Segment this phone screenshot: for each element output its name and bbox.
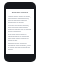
staticText: Lorem ipsum dolor sit amet, consectetur … [8,15,32,23]
button[interactable] [4,2,36,62]
staticText: Ut enim ad minim veniam, quis nostrud ex… [8,24,32,32]
staticText: Privacy Policy [8,10,32,13]
staticText: Duis aute irure dolor in reprehenderit i… [8,33,32,41]
staticText: Excepteur sint occaecat cupidatat non pr… [8,42,32,50]
